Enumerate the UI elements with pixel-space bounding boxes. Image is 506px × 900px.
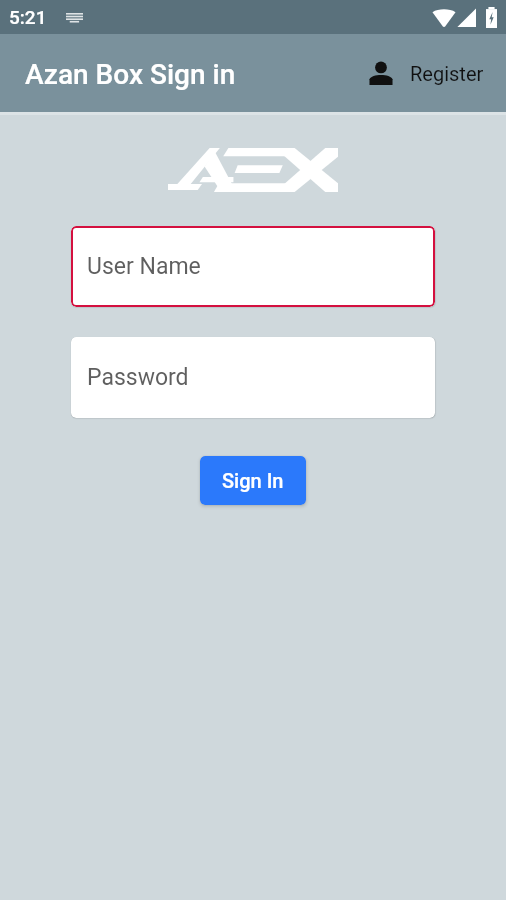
staticText: User Name [87,253,201,280]
other: Battery charging [486,7,497,28]
other: Register [369,61,393,85]
button[interactable]: Sign In [200,456,306,505]
button[interactable]: Password [71,337,435,418]
button[interactable]: User Name [71,226,435,307]
staticText: Password [87,364,189,391]
other: Wi-Fi [432,8,456,27]
staticText: Azan Box Sign in [25,58,236,91]
staticText: Register [410,62,484,85]
other: Mobile signal [457,8,476,27]
staticText: 5:21 [9,6,47,28]
staticText: Sign In [222,469,284,492]
button[interactable]: Register [369,61,484,85]
